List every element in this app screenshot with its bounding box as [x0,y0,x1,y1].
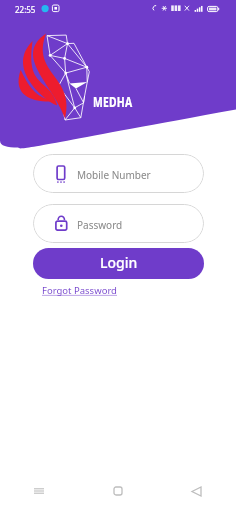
button[interactable]: Login [33,248,204,279]
staticText: 22:55 [15,4,36,15]
button[interactable]: Mobile Number [33,154,204,193]
staticText: Forgot Password [42,284,117,297]
button[interactable]: Forgot Password [42,284,117,297]
staticText: Login [100,253,138,272]
button[interactable]: Recents [0,470,78,512]
staticText: MEDHA [93,92,133,111]
staticText: Mobile Number [77,168,151,182]
button[interactable]: Back [157,470,236,512]
button[interactable]: Home [78,470,157,512]
staticText: Password [77,218,123,232]
button[interactable]: Password [33,204,204,243]
